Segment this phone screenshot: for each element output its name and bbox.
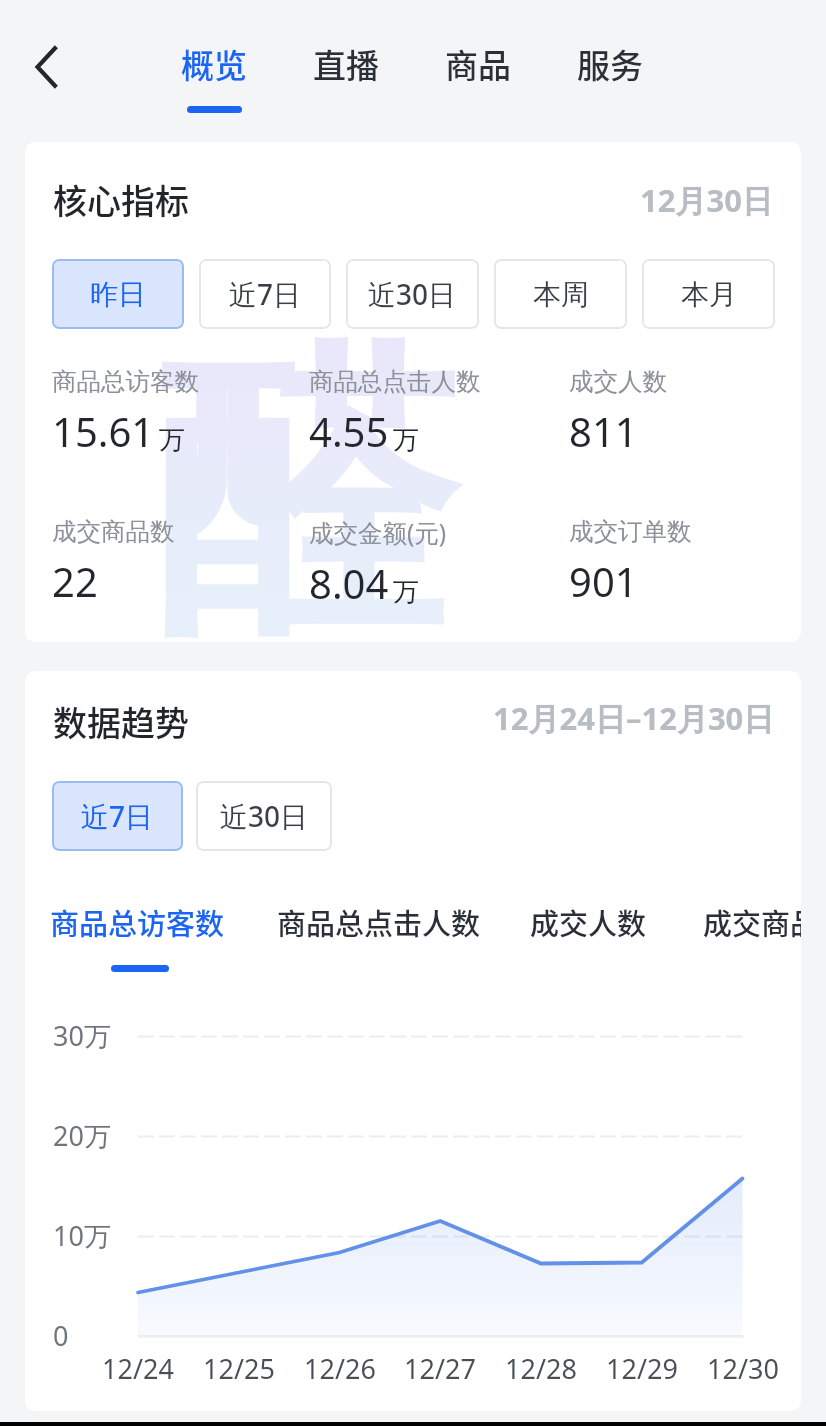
- button[interactable]: 概览: [158, 40, 270, 125]
- staticText: 数据趋势: [53, 697, 189, 746]
- staticText: 成交商品数: [703, 901, 801, 943]
- staticText: 22: [52, 554, 98, 608]
- staticText: 成交商品数: [52, 516, 175, 547]
- staticText: 12/24: [102, 1350, 174, 1387]
- staticText: 本月: [681, 277, 737, 312]
- staticText: 成交金额(元): [309, 516, 447, 549]
- staticText: 12/28: [505, 1350, 577, 1387]
- button[interactable]: 近7日: [199, 259, 331, 329]
- staticText: 成交人数: [530, 901, 647, 943]
- staticText: 12月30日: [640, 179, 773, 221]
- staticText: 昨日: [90, 277, 146, 312]
- staticText: 商品总点击人数: [309, 366, 481, 397]
- button[interactable]: 商品: [422, 40, 534, 125]
- staticText: 0: [53, 1317, 69, 1354]
- staticText: 近30日: [368, 275, 457, 313]
- staticText: 12/27: [404, 1350, 476, 1387]
- staticText: 商品总访客数: [52, 366, 199, 397]
- staticText: 概览: [181, 40, 247, 88]
- staticText: 商品总访客数: [50, 901, 225, 943]
- staticText: 商品总点击人数: [277, 901, 481, 943]
- staticText: 服务: [577, 40, 643, 88]
- button[interactable]: 本月: [642, 259, 775, 329]
- staticText: 8.04: [309, 556, 389, 610]
- staticText: 近7日: [81, 797, 154, 835]
- staticText: 本周: [533, 277, 589, 312]
- staticText: 12/30: [707, 1350, 779, 1387]
- button[interactable]: 服务: [554, 40, 666, 125]
- staticText: 万: [393, 576, 419, 609]
- staticText: 商品: [445, 40, 511, 88]
- button[interactable]: 直播: [290, 40, 402, 125]
- staticText: 万: [393, 424, 419, 457]
- staticText: 近30日: [220, 797, 309, 835]
- staticText: 10万: [53, 1217, 111, 1254]
- staticText: 醛: [155, 308, 455, 642]
- button[interactable]: 本周: [494, 259, 627, 329]
- button[interactable]: 近7日: [52, 781, 183, 851]
- button[interactable]: 商品总点击人数: [277, 901, 481, 943]
- staticText: 12月24日–12月30日: [493, 697, 775, 739]
- staticText: 811: [569, 404, 638, 458]
- staticText: 12/25: [203, 1350, 275, 1387]
- staticText: 12/26: [304, 1350, 376, 1387]
- staticText: 直播: [313, 40, 379, 88]
- staticText: 4.55: [309, 404, 389, 458]
- staticText: 15.61: [52, 404, 155, 458]
- button[interactable]: 近30日: [196, 781, 332, 851]
- button[interactable]: 近30日: [346, 259, 479, 329]
- staticText: 核心指标: [53, 175, 189, 224]
- staticText: 12/29: [606, 1350, 678, 1387]
- staticText: 20万: [53, 1117, 111, 1154]
- button[interactable]: 成交人数: [530, 901, 647, 943]
- button[interactable]: 昨日: [52, 259, 184, 329]
- staticText: 901: [569, 554, 638, 608]
- button[interactable]: 成交商品数: [703, 901, 801, 943]
- button[interactable]: Back: [15, 33, 83, 101]
- staticText: 成交人数: [569, 366, 667, 397]
- staticText: 30万: [53, 1017, 111, 1054]
- staticText: 近7日: [229, 275, 302, 313]
- button[interactable]: 商品总访客数: [50, 901, 225, 943]
- staticText: 成交订单数: [569, 516, 692, 547]
- staticText: 万: [159, 424, 185, 457]
